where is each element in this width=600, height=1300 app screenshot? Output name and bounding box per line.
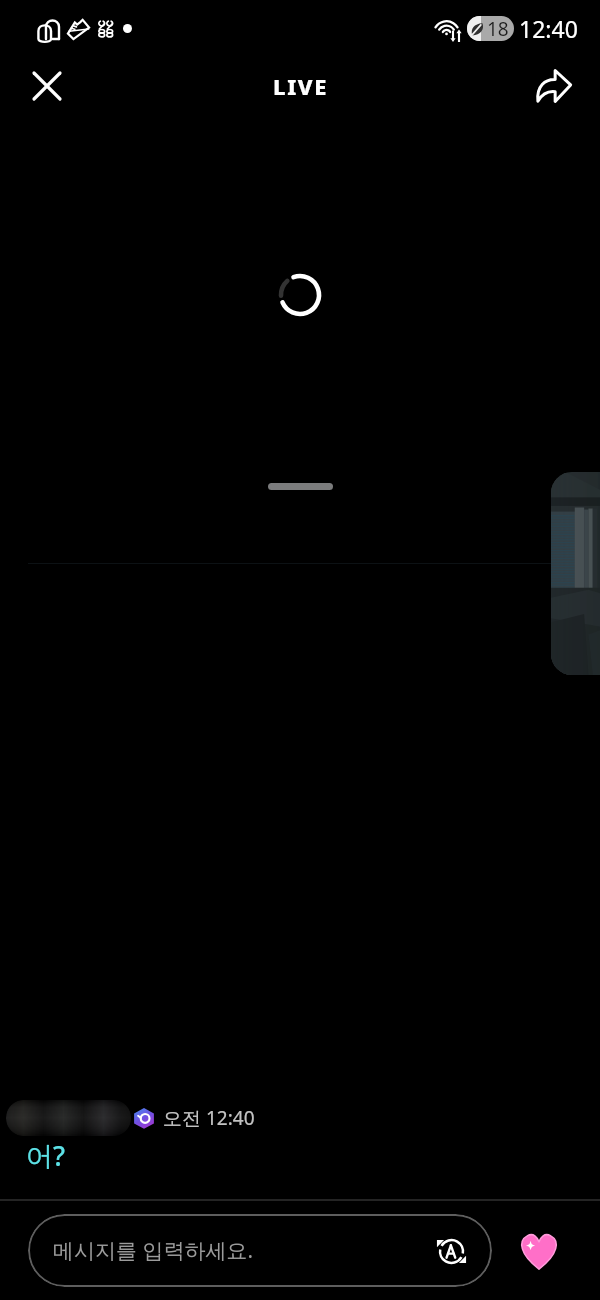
button[interactable]: 오전 12:40 [6,1100,255,1174]
button[interactable]: Like [513,1225,565,1277]
staticText: 메시지를 입력하세요. [53,1236,254,1265]
staticText: 18 [487,16,509,41]
button[interactable]: 메시지를 입력하세요. [28,1214,492,1287]
button[interactable]: Video preview [551,472,600,675]
button[interactable]: Close [20,59,74,113]
staticText: 어? [26,1137,66,1174]
staticText: 12:40 [519,13,578,44]
staticText: LIVE [273,71,328,101]
button[interactable]: Translate [430,1230,472,1272]
staticText: 오전 12:40 [163,1105,255,1131]
button[interactable]: Share [526,59,580,113]
